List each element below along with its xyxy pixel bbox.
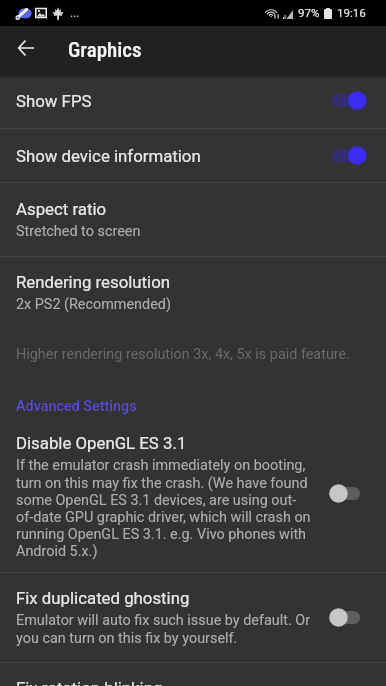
staticText: Emulator will auto fix such issue by def… [16, 612, 313, 646]
button[interactable]: Show device information [0, 129, 386, 182]
staticText: 2x PS2 (Recommended) [16, 296, 171, 313]
button[interactable]: Show FPS [0, 73, 386, 128]
button[interactable]: Fix rotation blinking [0, 663, 386, 686]
staticText: 97% [298, 6, 320, 20]
staticText: Aspect ratio [16, 199, 107, 219]
staticText: Stretched to screen [16, 223, 141, 240]
button[interactable]: Aspect ratio [0, 183, 386, 256]
staticText: ... [70, 6, 80, 20]
button[interactable]: Higher rendering resolution 3x, 4x, 5x i… [0, 346, 386, 363]
staticText: Fix duplicated ghosting [16, 588, 190, 608]
staticText: Graphics [68, 38, 142, 63]
staticText: Show device information [16, 146, 329, 166]
staticText: Fix rotation blinking [16, 678, 163, 686]
staticText: Advanced Settings [16, 398, 137, 415]
staticText: Rendering resolution [16, 272, 171, 292]
button[interactable]: Rendering resolution [0, 257, 386, 313]
button[interactable]: Disable OpenGL ES 3.1 [0, 433, 386, 559]
button[interactable]: Fix duplicated ghosting [0, 573, 386, 662]
staticText: Higher rendering resolution 3x, 4x, 5x i… [16, 346, 351, 363]
staticText: Show FPS [16, 91, 329, 111]
button[interactable]: Advanced Settings [0, 398, 386, 415]
staticText: 19:16 [337, 6, 366, 20]
staticText: Disable OpenGL ES 3.1 [16, 433, 187, 453]
staticText: If the emulator crash immediately on boo… [16, 457, 313, 559]
button[interactable]: Back [6, 28, 46, 68]
